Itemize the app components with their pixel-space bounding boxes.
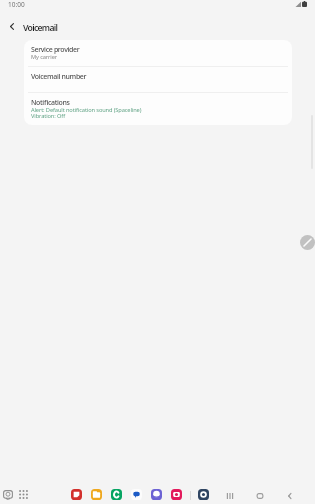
button[interactable]: Samsung Notes xyxy=(71,489,82,500)
button[interactable]: Phone xyxy=(111,489,122,500)
button[interactable]: Settings xyxy=(198,489,209,500)
staticText: Service provider xyxy=(31,45,80,55)
button[interactable]: Recent apps xyxy=(222,488,238,504)
staticText: 10:00 xyxy=(8,0,25,9)
button[interactable]: Voicemail number xyxy=(24,67,292,92)
button[interactable]: Recent apps xyxy=(2,489,13,500)
button[interactable]: Edge panel handle xyxy=(300,235,315,250)
button[interactable]: Back xyxy=(282,488,298,504)
staticText: Alert: Default notification sound (Space… xyxy=(31,106,142,114)
button[interactable]: Internet xyxy=(151,489,162,500)
staticText: Notifications xyxy=(31,98,70,108)
staticText: Vibration: Off xyxy=(31,112,66,120)
button[interactable]: My Files xyxy=(91,489,102,500)
button[interactable]: Camera xyxy=(171,489,182,500)
button[interactable]: Home xyxy=(252,488,268,504)
button[interactable]: Service provider xyxy=(24,40,292,66)
button[interactable]: Navigate up xyxy=(3,17,21,35)
button[interactable]: Messages xyxy=(131,489,142,500)
staticText: Voicemail number xyxy=(31,72,87,82)
staticText: Voicemail xyxy=(23,22,58,34)
button[interactable]: Apps xyxy=(18,489,29,500)
button[interactable]: Notifications xyxy=(24,93,292,125)
staticText: My carrier xyxy=(31,53,57,61)
